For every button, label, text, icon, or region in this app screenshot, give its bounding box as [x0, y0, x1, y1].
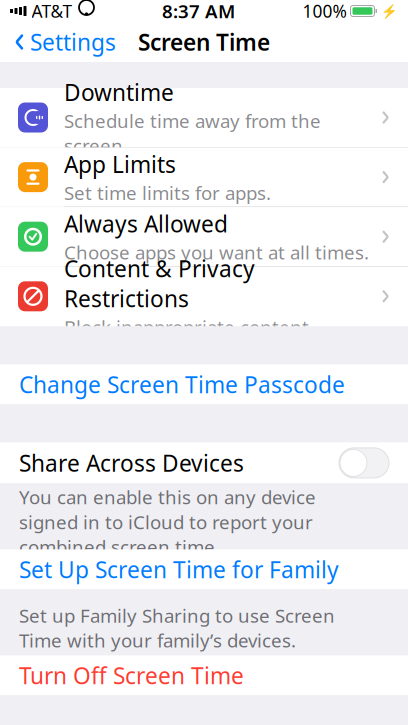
staticText: Always Allowed: [64, 209, 228, 239]
button[interactable]: App Limits: [0, 148, 408, 207]
staticText: Share Across Devices: [19, 448, 244, 478]
staticText: Settings: [30, 27, 116, 57]
staticText: Change Screen Time Passcode: [19, 369, 345, 399]
staticText: Set time limits for apps.: [64, 180, 271, 205]
staticText: Choose apps you want at all times.: [64, 240, 369, 265]
button[interactable]: Always Allowed: [0, 207, 408, 267]
staticText: Schedule time away from the screen.: [64, 108, 321, 158]
staticText: Block inappropriate content.: [64, 314, 314, 339]
staticText: Turn Off Screen Time: [19, 660, 244, 690]
button[interactable]: Share Across Devices: [338, 447, 390, 479]
button[interactable]: Change Screen Time Passcode: [0, 364, 408, 404]
staticText: App Limits: [64, 149, 176, 179]
staticText: 8:37 AM: [162, 0, 235, 23]
staticText: ⚡: [381, 3, 398, 19]
staticText: 100%: [302, 0, 346, 22]
staticText: Downtime: [64, 77, 174, 107]
button[interactable]: Settings: [4, 21, 126, 63]
staticText: Screen Time: [138, 27, 270, 57]
button[interactable]: Turn Off Screen Time: [0, 655, 408, 695]
staticText: AT&T: [31, 0, 72, 22]
button[interactable]: Downtime: [0, 88, 408, 148]
button[interactable]: Set Up Screen Time for Family: [0, 549, 408, 589]
button[interactable]: Content & Privacy Restrictions: [0, 267, 408, 326]
staticText: Content & Privacy Restrictions: [64, 253, 255, 313]
staticText: You can enable this on any device signed…: [19, 485, 316, 559]
staticText: Set up Family Sharing to use Screen Time…: [19, 603, 335, 653]
staticText: Set Up Screen Time for Family: [19, 554, 339, 584]
